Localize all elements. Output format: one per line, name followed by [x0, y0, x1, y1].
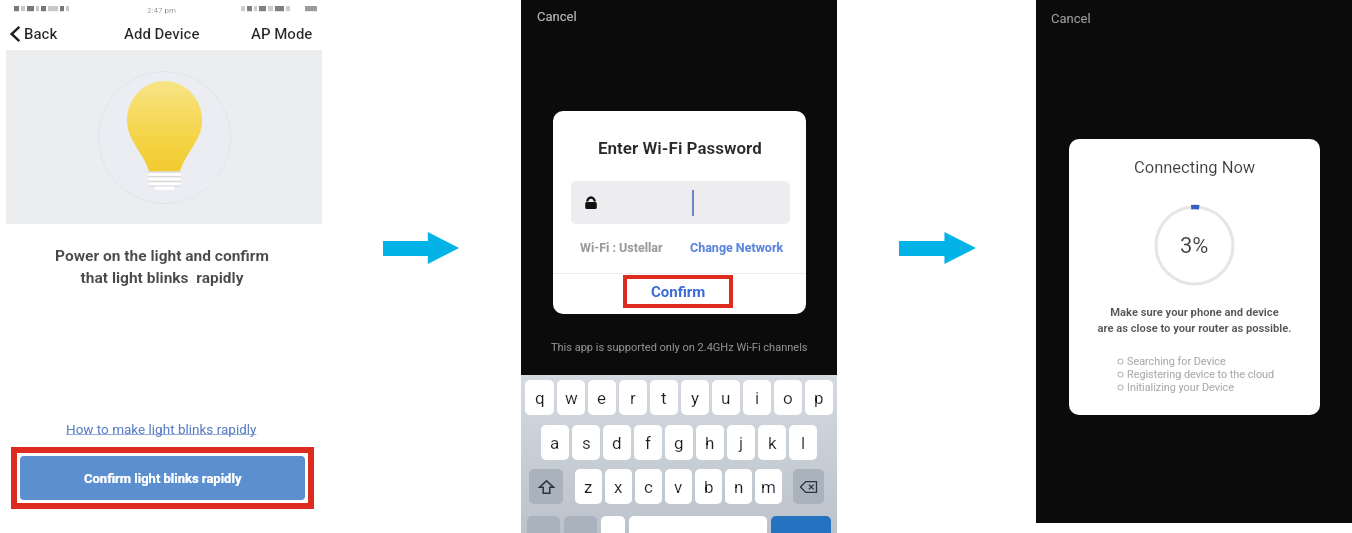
staticText: z — [584, 477, 593, 497]
button[interactable]: How to make light blinks rapidly — [66, 421, 257, 437]
button[interactable]: g — [665, 425, 693, 460]
staticText: g — [674, 433, 684, 453]
button[interactable]: m — [755, 469, 782, 504]
staticText: x — [614, 477, 623, 497]
staticText: w — [565, 388, 578, 408]
staticText: f — [645, 433, 651, 453]
button[interactable]: l — [789, 425, 817, 460]
button[interactable]: k — [758, 425, 786, 460]
button[interactable]: Space — [629, 516, 767, 533]
staticText: p — [814, 388, 824, 408]
staticText: Make sure your phone and device are as c… — [1097, 306, 1292, 335]
staticText: k — [768, 433, 777, 453]
staticText: l — [801, 433, 806, 453]
button[interactable]: w — [557, 380, 585, 415]
staticText: v — [674, 477, 683, 497]
staticText: Confirm — [651, 283, 706, 301]
button[interactable]: o — [774, 380, 802, 415]
button[interactable]: y — [681, 380, 709, 415]
staticText: This app is supported only on 2.4GHz Wi-… — [551, 341, 808, 354]
button[interactable]: i — [743, 380, 771, 415]
staticText: y — [691, 388, 700, 408]
button[interactable]: Confirm — [553, 274, 806, 314]
button[interactable]: Back — [10, 25, 58, 43]
staticText: Add Device — [124, 25, 200, 43]
button[interactable]: t — [650, 380, 678, 415]
button[interactable]: d — [603, 425, 631, 460]
staticText: Cancel — [1051, 11, 1091, 26]
button[interactable]: Cancel — [537, 9, 577, 24]
staticText: Enter Wi-Fi Password — [598, 138, 762, 158]
staticText: s — [582, 433, 591, 453]
staticText: Initializing your Device — [1127, 381, 1234, 394]
staticText: u — [721, 388, 731, 408]
button[interactable]: Comma — [601, 516, 625, 533]
button[interactable]: Cancel — [1051, 11, 1091, 26]
staticText: Power on the light and confirm that ligh… — [55, 247, 269, 287]
staticText: c — [644, 477, 653, 497]
staticText: q — [535, 388, 545, 408]
button[interactable]: e — [588, 380, 616, 415]
staticText: j — [739, 433, 744, 453]
button[interactable]: z — [575, 469, 602, 504]
button[interactable]: r — [619, 380, 647, 415]
staticText: b — [704, 477, 714, 497]
button[interactable]: j — [727, 425, 755, 460]
staticText: r — [630, 388, 636, 408]
staticText: e — [597, 388, 607, 408]
button[interactable]: q — [525, 380, 554, 415]
staticText: How to make light blinks rapidly — [66, 421, 257, 437]
button[interactable]: b — [695, 469, 722, 504]
staticText: i — [755, 388, 760, 408]
button[interactable]: x — [605, 469, 632, 504]
staticText: Cancel — [537, 9, 577, 24]
staticText: t — [661, 388, 667, 408]
button[interactable]: n — [725, 469, 752, 504]
staticText: Confirm light blinks rapidly — [84, 471, 242, 486]
staticText: n — [734, 477, 744, 497]
button[interactable]: c — [635, 469, 662, 504]
staticText: Back — [24, 25, 58, 43]
staticText: d — [612, 433, 622, 453]
button[interactable]: Confirm light blinks rapidly — [20, 456, 305, 500]
staticText: Searching for Device — [1127, 355, 1226, 368]
button[interactable]: Enter — [771, 516, 831, 533]
button[interactable]: s — [572, 425, 600, 460]
button[interactable]: p — [805, 380, 833, 415]
button[interactable]: Backspace — [793, 469, 824, 504]
button[interactable]: AP Mode — [251, 25, 313, 43]
staticText: h — [705, 433, 715, 453]
staticText: a — [550, 433, 560, 453]
button[interactable]: Shift — [529, 469, 563, 504]
staticText: Registering device to the cloud — [1127, 368, 1275, 381]
button[interactable]: u — [712, 380, 740, 415]
staticText: 2:47 pm — [147, 6, 176, 15]
button[interactable]: a — [541, 425, 569, 460]
staticText: Connecting Now — [1134, 158, 1256, 177]
staticText: 3% — [1180, 233, 1209, 259]
button[interactable]: v — [665, 469, 692, 504]
button[interactable] — [571, 181, 790, 224]
staticText: Wi-Fi : Ustellar — [580, 240, 663, 255]
staticText: Change Network — [690, 240, 784, 255]
button[interactable]: h — [696, 425, 724, 460]
staticText: AP Mode — [251, 25, 313, 43]
button[interactable]: f — [634, 425, 662, 460]
button[interactable]: Change Network — [690, 240, 784, 255]
staticText: m — [761, 477, 776, 497]
staticText: o — [783, 388, 793, 408]
